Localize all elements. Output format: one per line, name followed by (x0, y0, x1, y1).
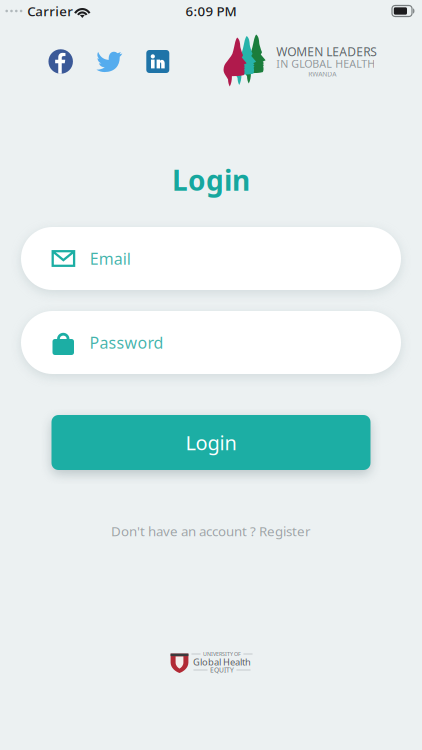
staticText: Don't have an account ? Register (111, 522, 311, 540)
staticText: Carrier (27, 2, 73, 20)
button[interactable]: Twitter (96, 48, 122, 74)
staticText: RWANDA (308, 70, 336, 78)
staticText: Email (90, 248, 131, 269)
staticText: UNIVERSITY OF (203, 650, 241, 658)
staticText: IN GLOBAL HEALTH (276, 56, 375, 71)
button[interactable]: LinkedIn (146, 50, 169, 73)
staticText: EQUITY (210, 666, 234, 674)
staticText: Password (89, 332, 163, 353)
staticText: WOMEN LEADERS (276, 43, 377, 59)
staticText: Global Health (193, 656, 251, 668)
button[interactable]: Login (51, 415, 370, 470)
staticText: 6:09 PM (185, 2, 236, 20)
button[interactable]: Facebook (48, 49, 73, 74)
staticText: Login (185, 429, 236, 456)
button[interactable]: Don't have an account ? Register (111, 522, 311, 540)
staticText: Login (172, 161, 250, 199)
